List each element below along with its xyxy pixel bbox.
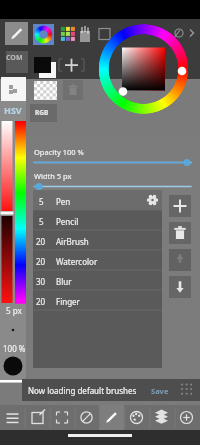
button[interactable] bbox=[33, 270, 162, 290]
button[interactable]: Colour picker bbox=[33, 24, 54, 45]
staticText: 5 bbox=[39, 196, 44, 207]
button[interactable]: Select bbox=[50, 405, 75, 430]
button[interactable]: Delete brush bbox=[169, 222, 191, 244]
button[interactable]: Eraser bbox=[75, 405, 100, 430]
staticText: Pencil bbox=[56, 216, 79, 227]
staticText: Save bbox=[151, 386, 169, 396]
button[interactable] bbox=[33, 210, 162, 230]
staticText: AirBrush bbox=[56, 236, 89, 247]
staticText: Now loading default brushes bbox=[28, 385, 137, 396]
staticText: 30 bbox=[36, 276, 46, 287]
staticText: Opacity 100 % bbox=[34, 147, 84, 157]
staticText: COM bbox=[6, 53, 23, 63]
staticText: 5 px bbox=[6, 305, 22, 316]
button[interactable]: Add bbox=[175, 405, 200, 430]
staticText: Pen bbox=[56, 196, 71, 207]
button[interactable]: Menu bbox=[0, 405, 25, 430]
button[interactable]: Move up bbox=[169, 249, 191, 271]
staticText: 5 bbox=[39, 216, 44, 227]
staticText: RGB bbox=[35, 108, 49, 117]
button[interactable] bbox=[33, 190, 162, 210]
staticText: 20 bbox=[36, 256, 46, 267]
staticText: 100 % bbox=[3, 343, 26, 354]
button[interactable]: Palette bbox=[60, 26, 76, 42]
staticText: Watercolor bbox=[56, 256, 98, 267]
button[interactable]: Palette bbox=[125, 405, 150, 430]
button[interactable]: Brush tool bbox=[5, 22, 28, 45]
button[interactable]: Add brush bbox=[169, 195, 191, 217]
button[interactable] bbox=[145, 383, 177, 398]
button[interactable]: Edit bbox=[25, 405, 50, 430]
button[interactable]: Move down bbox=[169, 276, 191, 298]
button[interactable]: Layers bbox=[150, 405, 175, 430]
button[interactable]: Brush bbox=[100, 405, 125, 430]
button[interactable] bbox=[33, 230, 162, 250]
button[interactable] bbox=[33, 250, 162, 270]
staticText: 20 bbox=[36, 296, 46, 307]
button[interactable]: Brush settings bbox=[146, 193, 160, 207]
staticText: 20 bbox=[36, 236, 46, 247]
staticText: Width 5 px bbox=[34, 171, 72, 181]
staticText: HSV bbox=[4, 104, 22, 116]
staticText: Blur bbox=[56, 276, 72, 287]
button[interactable] bbox=[33, 290, 162, 310]
staticText: Finger bbox=[56, 296, 80, 307]
